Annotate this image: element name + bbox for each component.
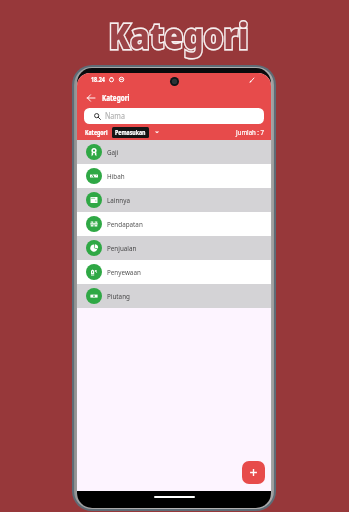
button[interactable]: Add category bbox=[242, 461, 265, 484]
button[interactable] bbox=[112, 127, 149, 138]
button[interactable] bbox=[77, 212, 271, 236]
button[interactable] bbox=[84, 108, 264, 124]
button[interactable] bbox=[77, 188, 271, 212]
button[interactable] bbox=[77, 236, 271, 260]
button[interactable] bbox=[77, 284, 271, 308]
staticText: Kategori bbox=[108, 11, 249, 60]
button[interactable] bbox=[77, 140, 271, 164]
button[interactable] bbox=[77, 164, 271, 188]
button[interactable]: Dropdown bbox=[154, 129, 160, 135]
button[interactable]: Back bbox=[84, 91, 97, 104]
staticText: Kategori bbox=[108, 11, 249, 60]
button[interactable] bbox=[77, 260, 271, 284]
